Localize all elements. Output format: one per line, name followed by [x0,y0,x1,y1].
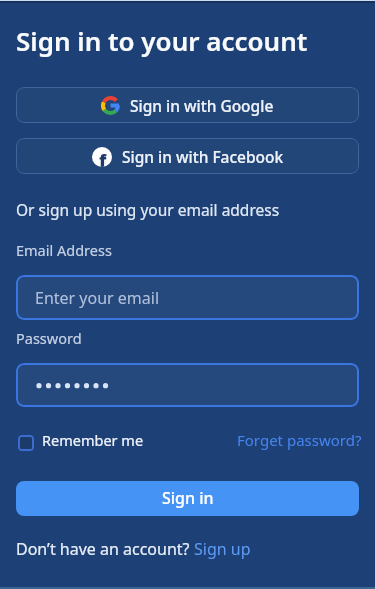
button[interactable]: Enter your email [16,275,359,320]
button[interactable]: Sign in with Google [16,87,359,123]
button[interactable]: f [16,138,359,174]
staticText: Password [16,328,82,348]
button[interactable] [16,363,359,407]
staticText: Don’t have an account? [16,538,194,560]
staticText: Sign in [162,487,214,509]
staticText: Sign in with Google [130,95,274,116]
staticText: f [99,148,107,167]
staticText: Sign in to your account [16,23,308,58]
button[interactable]: Sign in [16,481,359,516]
staticText: Remember me [42,430,144,450]
button[interactable]: Forget password? [237,430,362,450]
button[interactable]: Remember me [16,430,144,450]
button[interactable]: Sign up [194,538,251,560]
staticText: Email Address [16,240,112,260]
staticText: Or sign up using your email address [16,199,280,220]
staticText: Enter your email [35,287,160,309]
staticText: Sign in with Facebook [122,146,284,167]
